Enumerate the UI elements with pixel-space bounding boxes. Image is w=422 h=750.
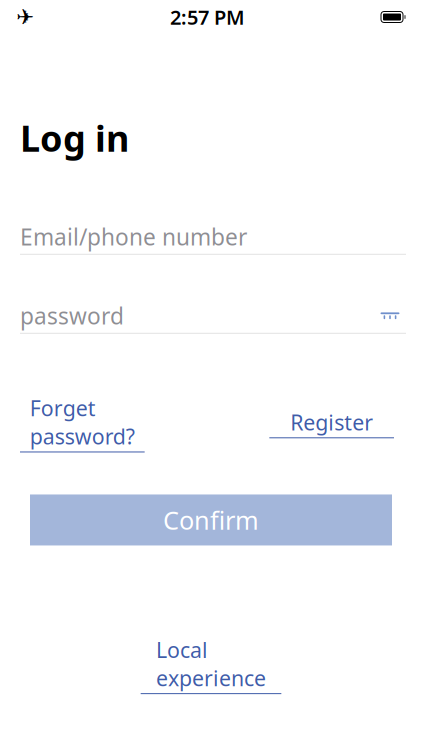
- button[interactable]: Forget password?: [20, 394, 145, 452]
- staticText: ✈: [16, 5, 34, 29]
- staticText: Log in: [20, 114, 129, 162]
- staticText: Email/phone number: [20, 222, 247, 252]
- button[interactable]: Local experience: [141, 635, 281, 694]
- staticText: 2:57 PM: [170, 4, 245, 30]
- staticText: Register: [290, 408, 373, 436]
- button[interactable]: Show password: [374, 301, 406, 331]
- staticText: Confirm: [163, 503, 259, 537]
- staticText: password: [20, 301, 124, 331]
- staticText: Forget password?: [30, 394, 135, 450]
- button[interactable]: Confirm: [30, 494, 392, 545]
- button[interactable]: Register: [269, 408, 394, 438]
- staticText: Local experience: [156, 635, 266, 692]
